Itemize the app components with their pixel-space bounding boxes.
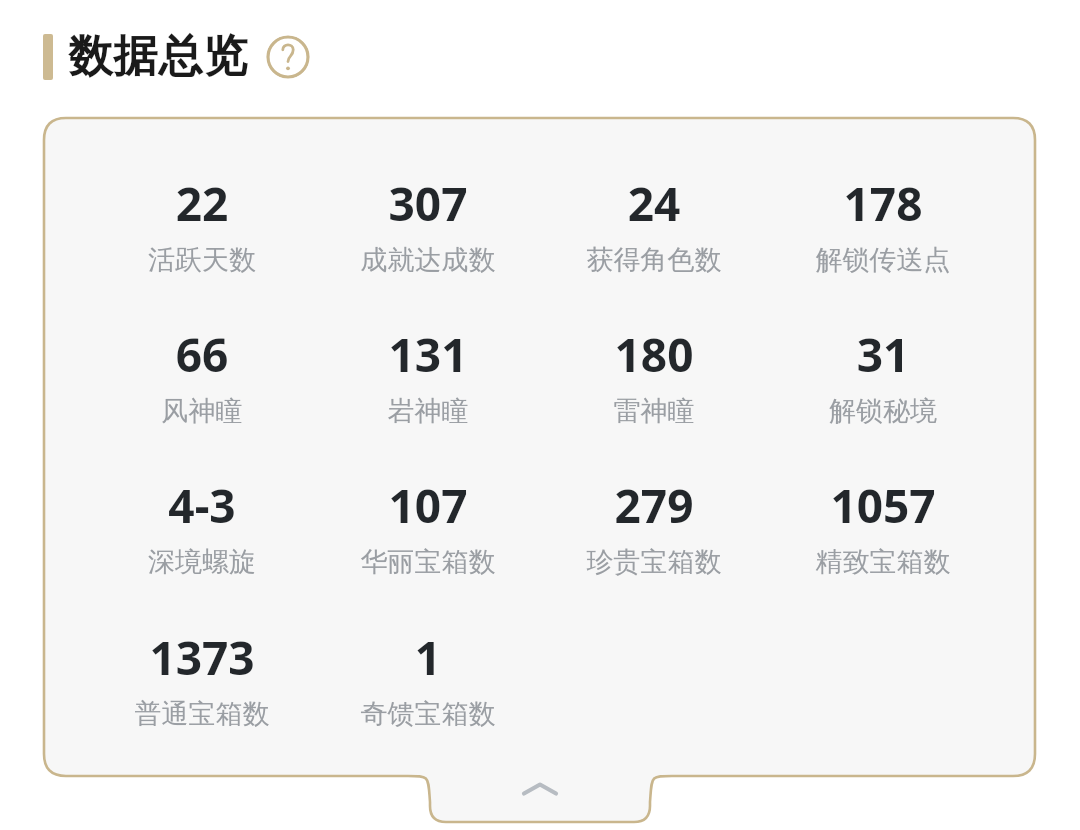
button[interactable]: 178 [773,172,993,277]
button[interactable]: 1 [318,626,538,731]
staticText: 解锁秘境 [773,394,993,428]
button[interactable]: 24 [544,172,764,277]
staticText: 107 [318,474,538,537]
staticText: 180 [544,323,764,386]
staticText: 66 [92,323,312,386]
staticText: 307 [318,172,538,235]
staticText: 岩神瞳 [318,394,538,428]
staticText: 24 [544,172,764,235]
button[interactable]: 279 [544,474,764,579]
button[interactable]: 说明 [266,35,310,79]
button[interactable]: 1373 [92,626,312,731]
staticText: 22 [92,172,312,235]
staticText: 风神瞳 [92,394,312,428]
button[interactable]: 31 [773,323,993,428]
staticText: 178 [773,172,993,235]
button[interactable]: 307 [318,172,538,277]
staticText: 131 [318,323,538,386]
staticText: 4-3 [92,474,312,537]
staticText: 获得角色数 [544,243,764,277]
staticText: 成就达成数 [318,243,538,277]
staticText: 普通宝箱数 [92,697,312,731]
staticText: 活跃天数 [92,243,312,277]
staticText: 31 [773,323,993,386]
button[interactable]: 180 [544,323,764,428]
staticText: 精致宝箱数 [773,545,993,579]
staticText: 深境螺旋 [92,545,312,579]
staticText: 279 [544,474,764,537]
staticText: 数据总览 [68,29,248,84]
staticText: 解锁传送点 [773,243,993,277]
staticText: 1373 [92,626,312,689]
staticText: 雷神瞳 [544,394,764,428]
staticText: 1 [318,626,538,689]
button[interactable]: 22 [92,172,312,277]
staticText: 奇馈宝箱数 [318,697,538,731]
button[interactable]: 107 [318,474,538,579]
staticText: 1057 [773,474,993,537]
button[interactable]: 4-3 [92,474,312,579]
button[interactable]: 66 [92,323,312,428]
staticText: 华丽宝箱数 [318,545,538,579]
button[interactable]: 收起 [430,776,650,826]
staticText: 珍贵宝箱数 [544,545,764,579]
button[interactable]: 1057 [773,474,993,579]
button[interactable]: 131 [318,323,538,428]
